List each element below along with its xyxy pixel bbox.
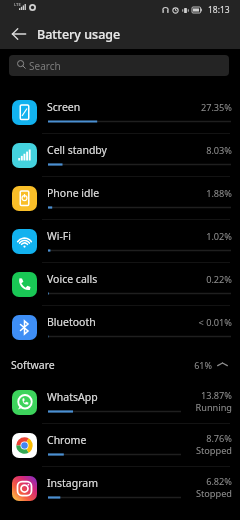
staticText: 1.88% — [150, 187, 232, 200]
staticText: Battery usage — [37, 26, 121, 43]
staticText: 8.03% — [150, 144, 232, 157]
staticText: 8.76% — [150, 432, 232, 445]
staticText: Instagram — [47, 476, 99, 490]
staticText: Stopped — [150, 487, 232, 500]
button[interactable]: Instagram — [0, 467, 240, 510]
staticText: Chrome — [47, 433, 87, 447]
staticText: < 0.01% — [150, 316, 232, 329]
staticText: Stopped — [150, 444, 232, 457]
staticText: Cell standby — [47, 143, 107, 157]
staticText: WhatsApp — [47, 390, 98, 404]
staticText: 13.87% — [150, 389, 232, 402]
staticText: Wi-Fi — [47, 229, 72, 243]
staticText: Voice calls — [47, 272, 98, 286]
button[interactable]: Voice calls — [0, 263, 240, 306]
staticText: 18:13 — [208, 4, 230, 16]
staticText: 61% — [150, 359, 212, 371]
button[interactable]: Software — [0, 349, 240, 381]
button[interactable]: Phone idle — [0, 177, 240, 220]
staticText: 0.22% — [150, 273, 232, 286]
staticText: 27.35% — [150, 101, 232, 114]
staticText: 1.02% — [150, 230, 232, 243]
staticText: Phone idle — [47, 186, 100, 200]
button[interactable]: Wi-Fi — [0, 220, 240, 263]
button[interactable]: Chrome — [0, 424, 240, 467]
button[interactable]: Search — [9, 55, 229, 76]
button[interactable]: WhatsApp — [0, 381, 240, 424]
staticText: Software — [11, 358, 55, 372]
staticText: Screen — [47, 100, 81, 114]
staticText: Search — [29, 59, 61, 73]
staticText: LTE — [14, 2, 21, 8]
staticText: 6.82% — [150, 475, 232, 488]
button[interactable]: Back — [5, 20, 33, 48]
button[interactable]: Screen — [0, 91, 240, 134]
button[interactable]: Cell standby — [0, 134, 240, 177]
button[interactable]: Bluetooth — [0, 306, 240, 349]
staticText: Bluetooth — [47, 315, 96, 329]
staticText: Running — [150, 401, 232, 414]
